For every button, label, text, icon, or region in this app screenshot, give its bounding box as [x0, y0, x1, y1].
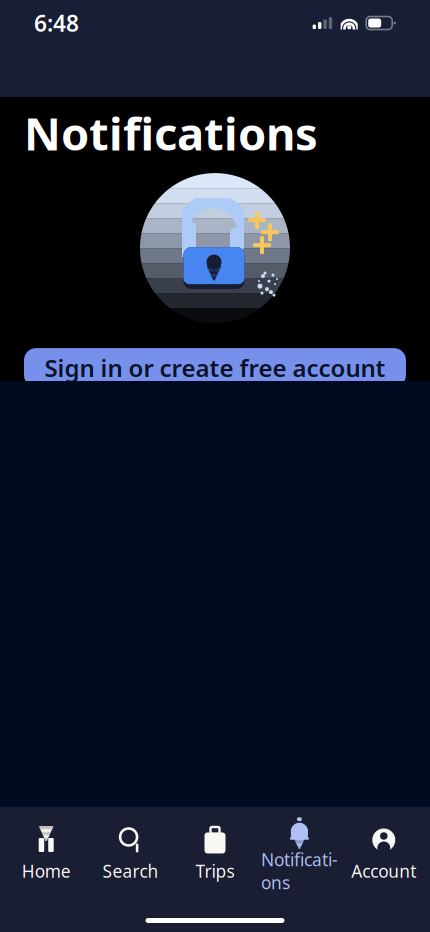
staticText: Notifications — [24, 103, 318, 163]
staticText: Account — [351, 859, 416, 882]
staticText: Notifications — [261, 848, 338, 894]
staticText: Home — [22, 859, 71, 882]
staticText: Sign in or create free account — [44, 352, 385, 384]
staticText: Trips — [195, 859, 234, 882]
button[interactable]: Account — [342, 818, 426, 892]
button[interactable]: Search — [88, 818, 173, 892]
staticText: 6:48 — [34, 8, 79, 38]
button[interactable]: Home — [4, 818, 88, 892]
staticText: Search — [103, 859, 159, 882]
button[interactable]: Notifications — [257, 807, 342, 904]
button[interactable]: Sign in or create free account — [24, 348, 406, 387]
button[interactable]: Trips — [173, 818, 257, 892]
